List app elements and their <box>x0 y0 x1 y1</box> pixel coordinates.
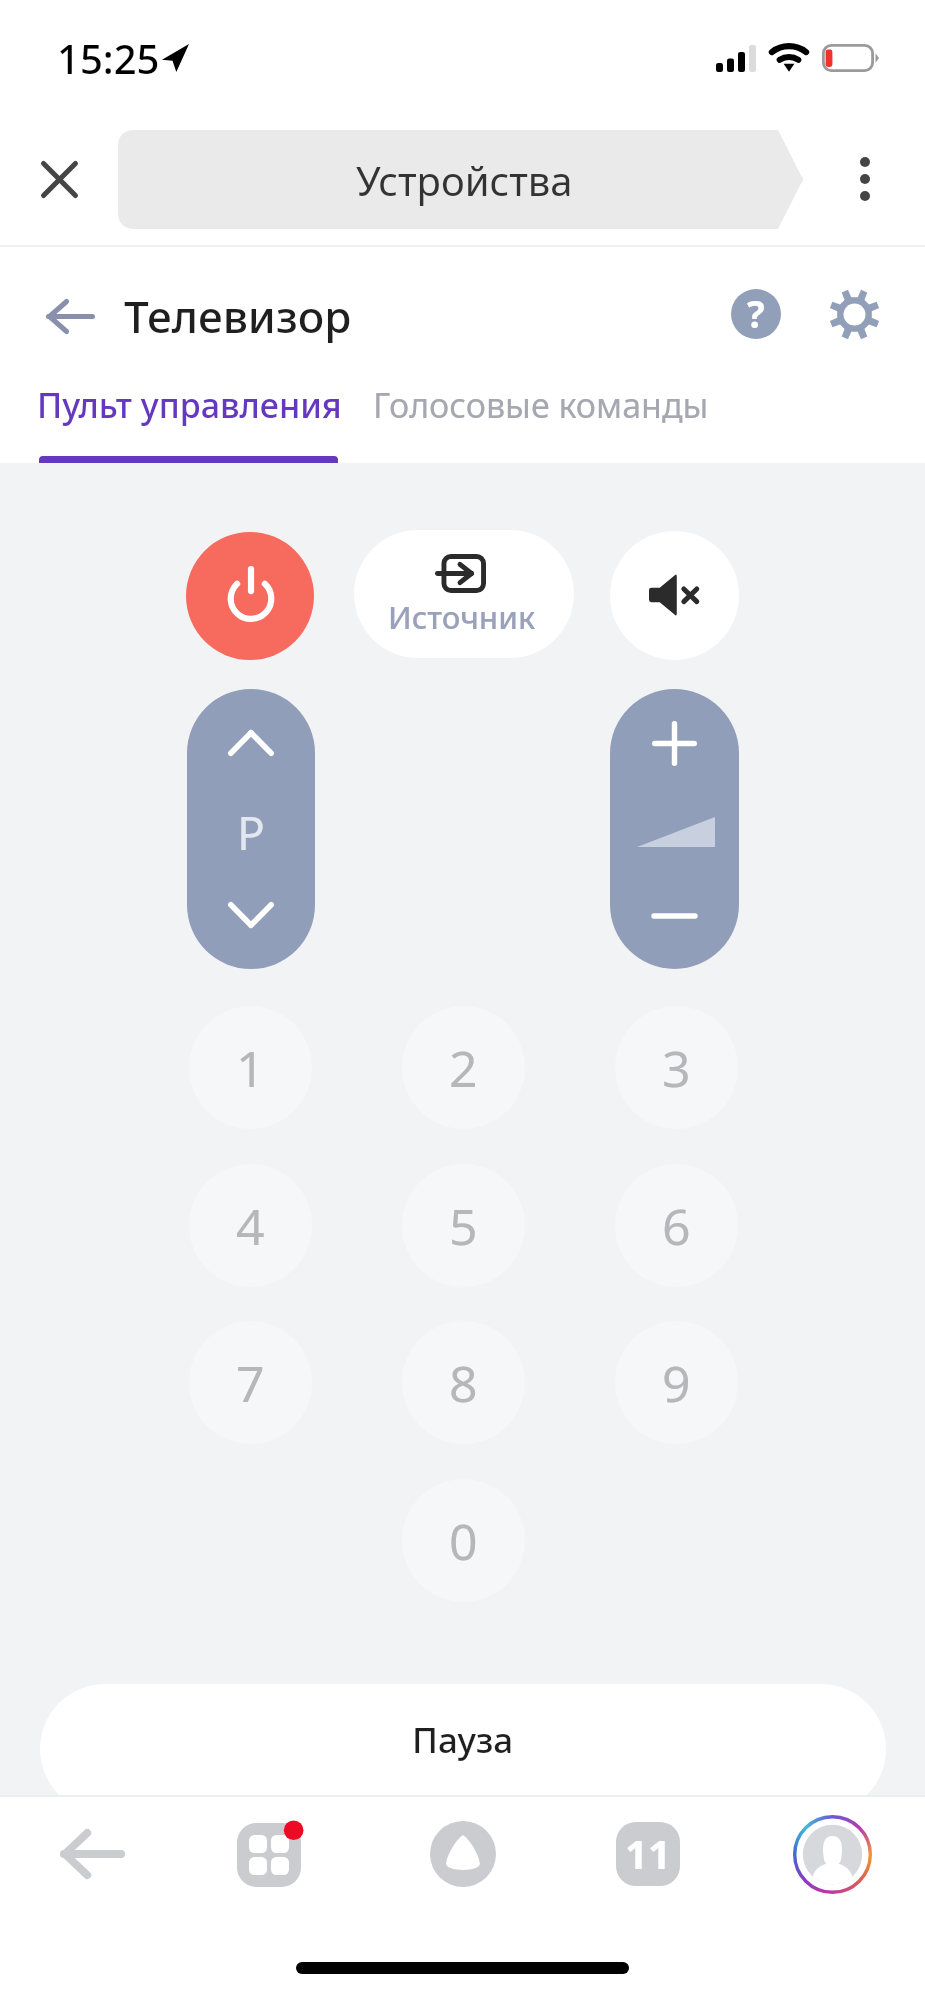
staticText: ? <box>747 289 765 338</box>
button[interactable]: 2 <box>402 1006 525 1129</box>
staticText: 4 <box>236 1192 265 1260</box>
staticText: 0 <box>449 1507 478 1575</box>
staticText: 3 <box>662 1034 691 1102</box>
button[interactable]: Mute <box>610 531 739 660</box>
button[interactable]: 3 <box>615 1006 738 1129</box>
staticText: 1 <box>236 1034 265 1102</box>
button[interactable]: 4 <box>189 1164 312 1287</box>
staticText: 9 <box>662 1349 691 1417</box>
button[interactable]: Volume up <box>610 689 739 789</box>
staticText: 11 <box>625 1826 671 1880</box>
button[interactable]: 9 <box>615 1321 738 1444</box>
button[interactable]: Apps <box>226 1802 330 1906</box>
button[interactable]: Volume down <box>610 869 739 969</box>
button[interactable]: 1 <box>189 1006 312 1129</box>
staticText: 8 <box>449 1349 478 1417</box>
button[interactable]: Tabs <box>596 1802 700 1906</box>
button[interactable]: Телевизор <box>124 286 352 346</box>
button[interactable]: Channel up <box>187 689 315 789</box>
button[interactable]: 7 <box>189 1321 312 1444</box>
staticText: Пульт управления <box>37 382 342 428</box>
button[interactable]: Back <box>25 269 113 357</box>
button[interactable]: 8 <box>402 1321 525 1444</box>
staticText: Пауза <box>412 1716 514 1764</box>
button[interactable]: 0 <box>402 1479 525 1602</box>
button[interactable]: More options <box>817 133 909 225</box>
button[interactable]: Пауза <box>40 1684 886 1814</box>
button[interactable]: Источник <box>354 530 574 658</box>
staticText: Телевизор <box>124 286 352 346</box>
button[interactable]: Settings <box>810 270 898 358</box>
button[interactable]: Устройства <box>118 130 805 229</box>
staticText: Источник <box>388 596 536 638</box>
button[interactable]: Пульт управления <box>15 368 364 442</box>
staticText: 15:25 <box>57 31 160 85</box>
button[interactable]: Profile <box>780 1802 884 1906</box>
button[interactable]: 6 <box>615 1164 738 1287</box>
button[interactable]: Help <box>712 270 800 358</box>
staticText: Устройства <box>356 153 573 207</box>
button[interactable]: Back <box>41 1802 145 1906</box>
button[interactable]: Alice <box>411 1802 515 1906</box>
button[interactable]: Голосовые команды <box>351 368 731 442</box>
staticText: 5 <box>449 1192 478 1260</box>
staticText: 7 <box>236 1349 265 1417</box>
button[interactable]: Power <box>186 532 314 660</box>
staticText: P <box>237 801 265 864</box>
button[interactable]: Channel down <box>187 869 315 969</box>
button[interactable]: 5 <box>402 1164 525 1287</box>
staticText: Голосовые команды <box>373 382 709 428</box>
button[interactable]: Close <box>17 133 109 225</box>
staticText: 6 <box>662 1192 691 1260</box>
staticText: 2 <box>449 1034 478 1102</box>
